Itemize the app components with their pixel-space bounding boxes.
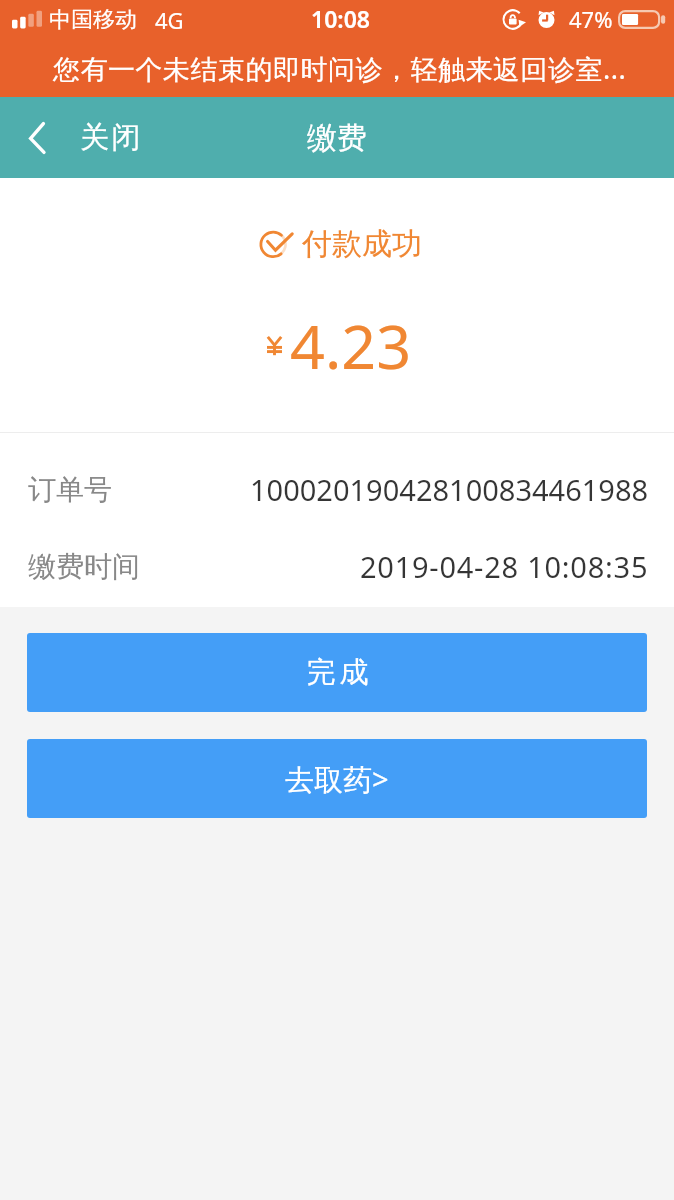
staticText: 10:08 (311, 3, 370, 34)
staticText: 47% (569, 4, 613, 34)
button[interactable]: 去取药> (27, 739, 647, 818)
staticText: 完成 (305, 654, 370, 691)
staticText: 付款成功 (302, 225, 422, 263)
staticText: 缴费时间 (28, 549, 140, 584)
staticText: 您有一个未结束的即时问诊，轻触来返回诊室... (53, 50, 627, 87)
button[interactable]: 完成 (27, 633, 647, 712)
other: Back (29, 122, 45, 154)
other: Battery 47% (618, 10, 666, 29)
button[interactable]: Back (0, 103, 162, 172)
button[interactable]: 您有一个未结束的即时问诊，轻触来返回诊室... (0, 40, 674, 97)
other: Alarm (537, 10, 556, 29)
staticText: 去取药> (285, 759, 389, 799)
other: Signal (12, 11, 42, 29)
staticText: 关闭 (80, 119, 144, 156)
staticText: 100020190428100834461988 (250, 470, 649, 509)
other: Rotation lock (503, 10, 526, 29)
staticText: 4G (155, 5, 184, 35)
staticText: 中国移动 (49, 6, 137, 34)
staticText: 订单号 (28, 472, 112, 507)
staticText: 缴费 (307, 119, 367, 157)
staticText: 4.23 (290, 304, 412, 387)
staticText: 2019-04-28 10:08:35 (360, 547, 649, 586)
